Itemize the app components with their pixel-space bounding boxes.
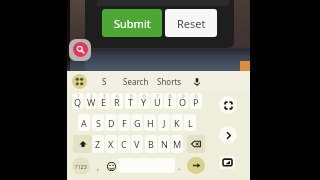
- staticText: 8: [169, 93, 172, 99]
- button[interactable]: 7: [151, 93, 163, 109]
- button[interactable]: 2: [85, 93, 97, 109]
- button[interactable]: 9: [177, 93, 189, 109]
- staticText: M: [173, 138, 182, 150]
- staticText: C: [121, 138, 127, 150]
- staticText: Reset: [177, 16, 206, 31]
- button[interactable]: Shorts: [156, 73, 183, 89]
- staticText: 9: [182, 93, 185, 99]
- staticText: F: [122, 117, 127, 129]
- staticText: 0: [195, 93, 198, 99]
- button[interactable]: Period: [174, 158, 184, 174]
- button[interactable]: L: [184, 114, 196, 131]
- button[interactable]: Search: [122, 73, 150, 89]
- staticText: H: [147, 117, 154, 129]
- staticText: ?123: [75, 163, 87, 170]
- button[interactable]: Symbols: [72, 157, 90, 175]
- button[interactable]: Reset: [165, 9, 217, 37]
- staticText: 3: [103, 93, 106, 99]
- button[interactable]: Fullscreen: [219, 96, 237, 114]
- staticText: B: [148, 138, 154, 150]
- button[interactable]: Voice input: [189, 74, 204, 89]
- button[interactable]: N: [158, 135, 170, 153]
- staticText: I: [168, 96, 172, 108]
- staticText: A: [81, 117, 87, 129]
- staticText: 1: [77, 93, 80, 99]
- staticText: 7: [156, 93, 159, 99]
- button[interactable]: Next: [219, 126, 237, 144]
- staticText: S: [96, 117, 101, 129]
- staticText: O: [179, 96, 187, 108]
- staticText: 2: [90, 93, 93, 99]
- staticText: D: [108, 117, 115, 129]
- button[interactable]: Z: [92, 135, 104, 153]
- button[interactable]: Enter: [187, 157, 205, 174]
- button[interactable]: Submit: [102, 9, 162, 37]
- staticText: T: [128, 96, 134, 108]
- staticText: 6: [143, 93, 146, 99]
- button[interactable]: A: [78, 114, 90, 131]
- button[interactable]: 4: [111, 93, 123, 109]
- staticText: Y: [141, 96, 147, 108]
- button[interactable]: S: [92, 114, 104, 131]
- button[interactable]: X: [105, 135, 117, 153]
- staticText: Submit: [114, 16, 151, 31]
- button[interactable]: Backspace: [187, 135, 205, 153]
- staticText: G: [134, 117, 141, 129]
- button[interactable]: G: [131, 114, 143, 131]
- button[interactable]: Comma: [93, 158, 103, 174]
- button[interactable]: 1: [72, 93, 84, 109]
- staticText: R: [114, 96, 120, 108]
- button[interactable]: 6: [138, 93, 150, 109]
- staticText: U: [154, 96, 161, 108]
- button[interactable]: K: [171, 114, 183, 131]
- button[interactable]: 3: [98, 93, 110, 109]
- button[interactable]: Gboard: [72, 74, 87, 89]
- staticText: 4: [116, 93, 119, 99]
- staticText: S: [102, 76, 107, 87]
- button[interactable]: J: [158, 114, 170, 131]
- button[interactable]: 8: [164, 93, 176, 109]
- staticText: Z: [95, 138, 101, 150]
- staticText: X: [108, 138, 114, 150]
- staticText: P: [193, 96, 199, 108]
- staticText: J: [163, 117, 166, 129]
- staticText: W: [87, 96, 96, 108]
- staticText: E: [101, 96, 107, 108]
- button[interactable]: F: [118, 114, 130, 131]
- button[interactable]: B: [145, 135, 157, 153]
- staticText: Search: [123, 76, 149, 87]
- staticText: K: [174, 117, 180, 129]
- button[interactable]: 5: [125, 93, 137, 109]
- button[interactable]: D: [105, 114, 117, 131]
- staticText: V: [134, 138, 140, 150]
- staticText: .: [178, 161, 181, 172]
- button[interactable]: H: [144, 114, 156, 131]
- button[interactable]: Shift: [73, 135, 92, 153]
- button[interactable]: C: [118, 135, 130, 153]
- button[interactable]: V: [131, 135, 143, 153]
- staticText: Shorts: [157, 76, 182, 87]
- button[interactable]: Emoji: [105, 158, 118, 174]
- staticText: ,: [97, 161, 100, 172]
- staticText: L: [188, 117, 193, 129]
- button[interactable]: S: [94, 73, 114, 89]
- button[interactable]: Search: [73, 42, 88, 57]
- staticText: N: [161, 138, 168, 150]
- staticText: 5: [130, 93, 133, 99]
- button[interactable]: Resize keyboard: [220, 156, 235, 169]
- staticText: Q: [74, 96, 82, 108]
- button[interactable]: 0: [190, 93, 202, 109]
- button[interactable]: M: [171, 135, 183, 153]
